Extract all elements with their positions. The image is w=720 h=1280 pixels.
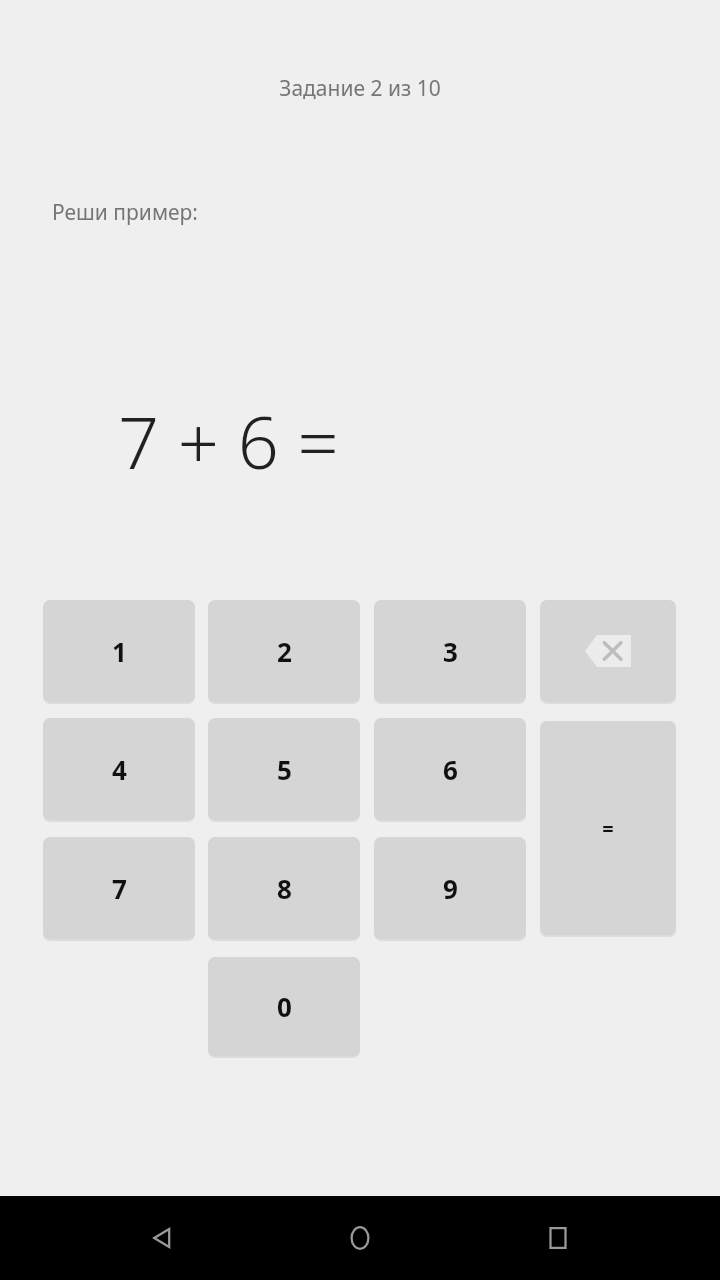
staticText: 8 [277, 871, 292, 906]
button[interactable]: 4 [43, 718, 195, 820]
staticText: Задание 2 из 10 [279, 74, 441, 103]
staticText: 4 [112, 752, 127, 787]
button[interactable]: = [540, 721, 676, 935]
button[interactable]: Recent apps [522, 1202, 594, 1274]
staticText: 5 [277, 752, 292, 787]
staticText: 3 [443, 634, 458, 669]
button[interactable]: 9 [374, 837, 526, 939]
button[interactable]: 6 [374, 718, 526, 820]
button[interactable]: Back [126, 1202, 198, 1274]
staticText: 1 [112, 634, 127, 669]
button[interactable]: 3 [374, 600, 526, 702]
staticText: 7 [112, 871, 127, 906]
button[interactable]: 7 [43, 837, 195, 939]
button[interactable]: 1 [43, 600, 195, 702]
staticText: 2 [277, 634, 292, 669]
staticText: Реши пример: [52, 198, 198, 227]
button[interactable]: 2 [208, 600, 360, 702]
button[interactable]: 8 [208, 837, 360, 939]
button[interactable]: Home [324, 1202, 396, 1274]
staticText: = [602, 815, 614, 842]
staticText: 9 [443, 871, 458, 906]
staticText: 7 + 6 = [118, 392, 339, 490]
button[interactable]: Backspace [540, 600, 676, 702]
button[interactable]: 5 [208, 718, 360, 820]
staticText: 0 [277, 989, 292, 1024]
staticText: 6 [443, 752, 458, 787]
button[interactable]: 0 [208, 957, 360, 1056]
